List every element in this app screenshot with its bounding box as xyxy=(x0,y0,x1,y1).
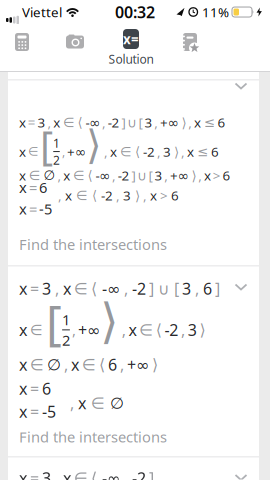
staticText: ⟩ xyxy=(197,321,206,339)
staticText: x xyxy=(19,113,26,131)
staticText: , xyxy=(70,320,78,340)
button[interactable]: x xyxy=(8,266,259,456)
staticText: x xyxy=(19,467,27,480)
staticText: x xyxy=(19,354,27,375)
button[interactable]: x xyxy=(8,80,259,265)
staticText: ∈ ⟨ xyxy=(79,355,108,374)
staticText: x xyxy=(194,113,201,131)
staticText: 11% xyxy=(202,3,229,21)
staticText: -2 xyxy=(132,278,146,299)
staticText: ∈ ⟨ xyxy=(70,168,95,183)
staticText: 1 xyxy=(62,310,70,329)
staticText: Viettel xyxy=(22,3,62,21)
staticText: +∞ xyxy=(160,113,179,131)
staticText: +∞ xyxy=(78,319,100,340)
staticText: 3 xyxy=(38,113,46,131)
staticText: 6 xyxy=(218,113,226,131)
staticText: , xyxy=(110,166,118,184)
staticText: , xyxy=(119,319,128,340)
staticText: = xyxy=(26,113,38,131)
staticText: ⟩ , xyxy=(189,166,204,184)
staticText: ∈ ⟨ xyxy=(60,115,85,130)
staticText: -∞ xyxy=(102,278,120,299)
staticText: = xyxy=(27,467,42,480)
staticText: x xyxy=(19,143,26,160)
staticText: 2 xyxy=(62,330,70,350)
staticText: = xyxy=(27,378,42,399)
staticText: Find the intersections xyxy=(19,234,167,254)
staticText: +∞ xyxy=(67,143,86,160)
staticText: 3 xyxy=(154,166,162,184)
staticText: ∅ xyxy=(47,355,61,374)
staticText: 3 xyxy=(163,143,171,160)
button[interactable]: Notebook xyxy=(166,28,210,56)
staticText: 6 xyxy=(203,278,212,299)
staticText: -∞ xyxy=(102,467,120,480)
staticText: , xyxy=(120,278,132,299)
staticText: ∅ xyxy=(44,168,56,183)
button[interactable]: Calculator xyxy=(0,28,44,56)
staticText: -∞ xyxy=(85,113,100,131)
staticText: ⟩ xyxy=(86,122,102,168)
staticText: , xyxy=(56,166,63,184)
staticText: , xyxy=(46,113,53,131)
staticText: , xyxy=(61,354,71,375)
staticText: 3 xyxy=(42,278,51,299)
staticText: -5 xyxy=(39,199,52,218)
button[interactable]: Camera xyxy=(53,28,97,56)
staticText: , xyxy=(102,143,110,160)
staticText: ⟩ xyxy=(149,355,158,374)
staticText: x xyxy=(19,177,27,197)
staticText: ] ∪ [ xyxy=(146,278,182,299)
staticText: , xyxy=(191,278,203,299)
staticText: ⟩ , xyxy=(171,143,187,160)
staticText: 6 xyxy=(223,166,231,184)
staticText: Find the intersections xyxy=(19,427,167,446)
staticText: x xyxy=(19,166,26,184)
staticText: x xyxy=(110,143,117,160)
staticText: 6 xyxy=(39,177,47,197)
staticText: -∞ xyxy=(95,166,110,184)
button[interactable]: Solution xyxy=(105,29,157,67)
staticText: x xyxy=(65,186,72,204)
staticText: , xyxy=(60,144,67,159)
staticText: ] ∪ [ xyxy=(120,113,144,131)
staticText: ∈ xyxy=(27,321,46,338)
staticText: 6 xyxy=(171,186,179,204)
staticText: , xyxy=(155,143,163,160)
staticText: 2 xyxy=(53,152,60,168)
staticText: , xyxy=(51,278,63,299)
button[interactable]: x xyxy=(8,457,259,479)
staticText: 3 xyxy=(42,467,51,480)
staticText: ] ∪ [ xyxy=(130,166,154,184)
staticText: ∈ xyxy=(26,145,40,158)
staticText: x xyxy=(19,199,27,218)
staticText: = xyxy=(27,199,39,218)
staticText: 3 xyxy=(188,319,197,340)
staticText: -2 xyxy=(118,166,130,184)
staticText: = xyxy=(27,177,39,197)
staticText: > xyxy=(211,166,223,184)
staticText: x xyxy=(19,278,27,299)
staticText: , xyxy=(58,186,65,204)
staticText: x xyxy=(128,319,136,340)
staticText: 6 xyxy=(42,378,51,399)
staticText: ∈ ⟨ xyxy=(136,321,164,339)
staticText: ⟩ , xyxy=(179,113,194,131)
staticText: x xyxy=(204,166,211,184)
staticText: 6 xyxy=(211,143,219,160)
staticText: x xyxy=(53,113,60,131)
staticText: x xyxy=(78,392,86,414)
staticText: , xyxy=(162,166,170,184)
staticText: , xyxy=(178,319,188,340)
staticText: ∈ ⟨ xyxy=(71,279,102,298)
staticText: -5 xyxy=(42,401,56,422)
staticText: x xyxy=(19,401,27,422)
staticText: ∈ ⟨ xyxy=(117,144,143,159)
staticText: ] xyxy=(146,467,154,480)
staticText: ∈ xyxy=(27,355,47,374)
staticText: x xyxy=(63,278,71,299)
staticText: x xyxy=(19,319,27,340)
